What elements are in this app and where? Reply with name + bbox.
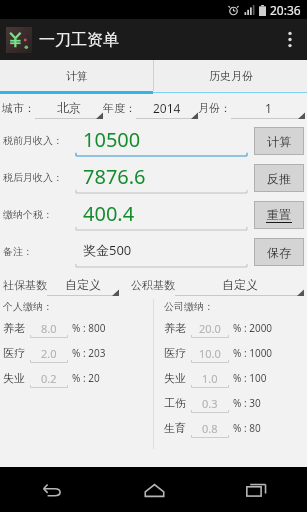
staticText: 2.0	[41, 346, 57, 361]
button[interactable]: 0.8	[191, 417, 229, 439]
button[interactable]: 20.0	[191, 317, 229, 339]
button[interactable]: 北京	[35, 96, 103, 119]
button[interactable]: 保存	[255, 239, 303, 265]
button[interactable]: More options	[273, 19, 307, 60]
button[interactable]: 历史月份	[154, 60, 307, 91]
staticText: 年度：	[103, 101, 136, 115]
staticText: 反推	[267, 171, 291, 186]
button[interactable]: 1	[231, 96, 305, 119]
button[interactable]: 10.0	[191, 342, 229, 364]
staticText: 0.3	[202, 396, 218, 411]
staticText: 奖金500	[83, 241, 132, 259]
staticText: % : 30	[233, 396, 261, 410]
button[interactable]: 计算	[255, 128, 303, 154]
button[interactable]: 重置	[255, 202, 303, 228]
button[interactable]: 2014	[136, 96, 198, 119]
button[interactable]: 0.2	[30, 367, 68, 389]
staticText: 医疗	[3, 346, 25, 360]
staticText: 400.4	[83, 200, 135, 227]
staticText: 保存	[267, 245, 291, 260]
button[interactable]: 自定义	[47, 273, 119, 296]
button[interactable]: Recents	[205, 467, 307, 512]
staticText: 养老	[3, 321, 25, 335]
staticText: 缴纳个税：	[3, 208, 53, 221]
button[interactable]: 2.0	[30, 342, 68, 364]
staticText: 1.0	[202, 371, 218, 386]
staticText: 社保基数	[3, 278, 47, 292]
staticText: 0.8	[202, 421, 218, 436]
staticText: 一刀工资单	[39, 30, 119, 50]
staticText: 税前月收入：	[3, 134, 63, 147]
staticText: 历史月份	[209, 69, 253, 83]
staticText: 失业	[164, 371, 186, 385]
staticText: 失业	[3, 371, 25, 385]
staticText: 养老	[164, 321, 186, 335]
staticText: % : 2000	[233, 321, 273, 335]
button[interactable]: 反推	[255, 165, 303, 191]
staticText: 7876.6	[83, 163, 146, 190]
staticText: 重置	[267, 207, 291, 222]
staticText: % : 80	[233, 421, 261, 435]
staticText: 1	[265, 100, 272, 116]
staticText: 公司缴纳：	[164, 300, 214, 313]
staticText: 城市：	[2, 101, 35, 115]
button[interactable]: 400.4	[75, 198, 248, 232]
button[interactable]: Back	[0, 467, 103, 512]
staticText: % : 20	[72, 371, 100, 385]
staticText: % : 800	[72, 321, 106, 335]
button[interactable]: 10500	[75, 124, 248, 158]
staticText: 工伤	[164, 396, 186, 410]
staticText: 自定义	[222, 277, 258, 292]
staticText: 生育	[164, 421, 186, 435]
staticText: 备注：	[3, 245, 33, 258]
staticText: 月份：	[198, 101, 231, 115]
staticText: 8.0	[41, 321, 57, 336]
staticText: % : 203	[72, 346, 106, 360]
button[interactable]: Home	[103, 467, 205, 512]
staticText: 计算	[267, 134, 291, 149]
staticText: 北京	[57, 100, 81, 115]
staticText: 10500	[83, 126, 141, 153]
button[interactable]: 8.0	[30, 317, 68, 339]
staticText: 公积基数	[131, 278, 175, 292]
button[interactable]: 自定义	[175, 273, 304, 296]
staticText: 自定义	[65, 277, 101, 292]
staticText: % : 1000	[233, 346, 273, 360]
staticText: % : 100	[233, 371, 267, 385]
button[interactable]: 计算	[0, 60, 153, 91]
staticText: 税后月收入：	[3, 171, 63, 184]
staticText: 医疗	[164, 346, 186, 360]
staticText: 个人缴纳：	[3, 300, 53, 313]
button[interactable]: 0.3	[191, 392, 229, 414]
staticText: 20:36	[270, 2, 301, 18]
staticText: 计算	[66, 69, 88, 83]
button[interactable]: 奖金500	[75, 235, 248, 269]
button[interactable]: 7876.6	[75, 161, 248, 195]
staticText: 20.0	[199, 321, 221, 336]
staticText: 0.2	[41, 371, 57, 386]
button[interactable]: 1.0	[191, 367, 229, 389]
staticText: 10.0	[199, 346, 221, 361]
staticText: 2014	[153, 100, 181, 116]
